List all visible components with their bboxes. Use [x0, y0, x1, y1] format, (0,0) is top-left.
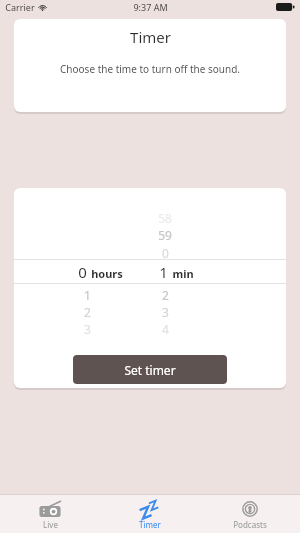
staticText: 9:37 AM — [133, 1, 168, 13]
staticText: 3 — [84, 321, 91, 337]
staticText: min — [172, 266, 194, 281]
staticText: Podcasts — [233, 519, 267, 530]
staticText: Set timer — [124, 362, 176, 378]
staticText: 58 — [158, 210, 172, 226]
staticText: 4 — [162, 321, 169, 337]
staticText: Timer — [130, 27, 171, 47]
staticText: 1 — [84, 287, 91, 303]
staticText: 59 — [158, 227, 172, 243]
staticText: 1 — [159, 262, 168, 282]
staticText: Choose the time to turn off the sound. — [60, 62, 240, 76]
button[interactable]: Podcasts — [200, 498, 300, 530]
staticText: 0 — [162, 245, 169, 261]
button[interactable]: Set timer — [73, 355, 227, 384]
button[interactable]: Timer — [100, 498, 200, 530]
staticText: Live — [43, 519, 58, 530]
button[interactable]: 0 — [14, 260, 286, 283]
staticText: 0 — [78, 262, 87, 282]
staticText: hours — [91, 266, 123, 281]
staticText: 3 — [162, 304, 169, 320]
staticText: Timer — [139, 519, 161, 530]
staticText: Carrier — [5, 1, 35, 13]
button[interactable]: Live — [0, 498, 100, 530]
staticText: 2 — [162, 287, 169, 303]
staticText: 2 — [84, 304, 91, 320]
